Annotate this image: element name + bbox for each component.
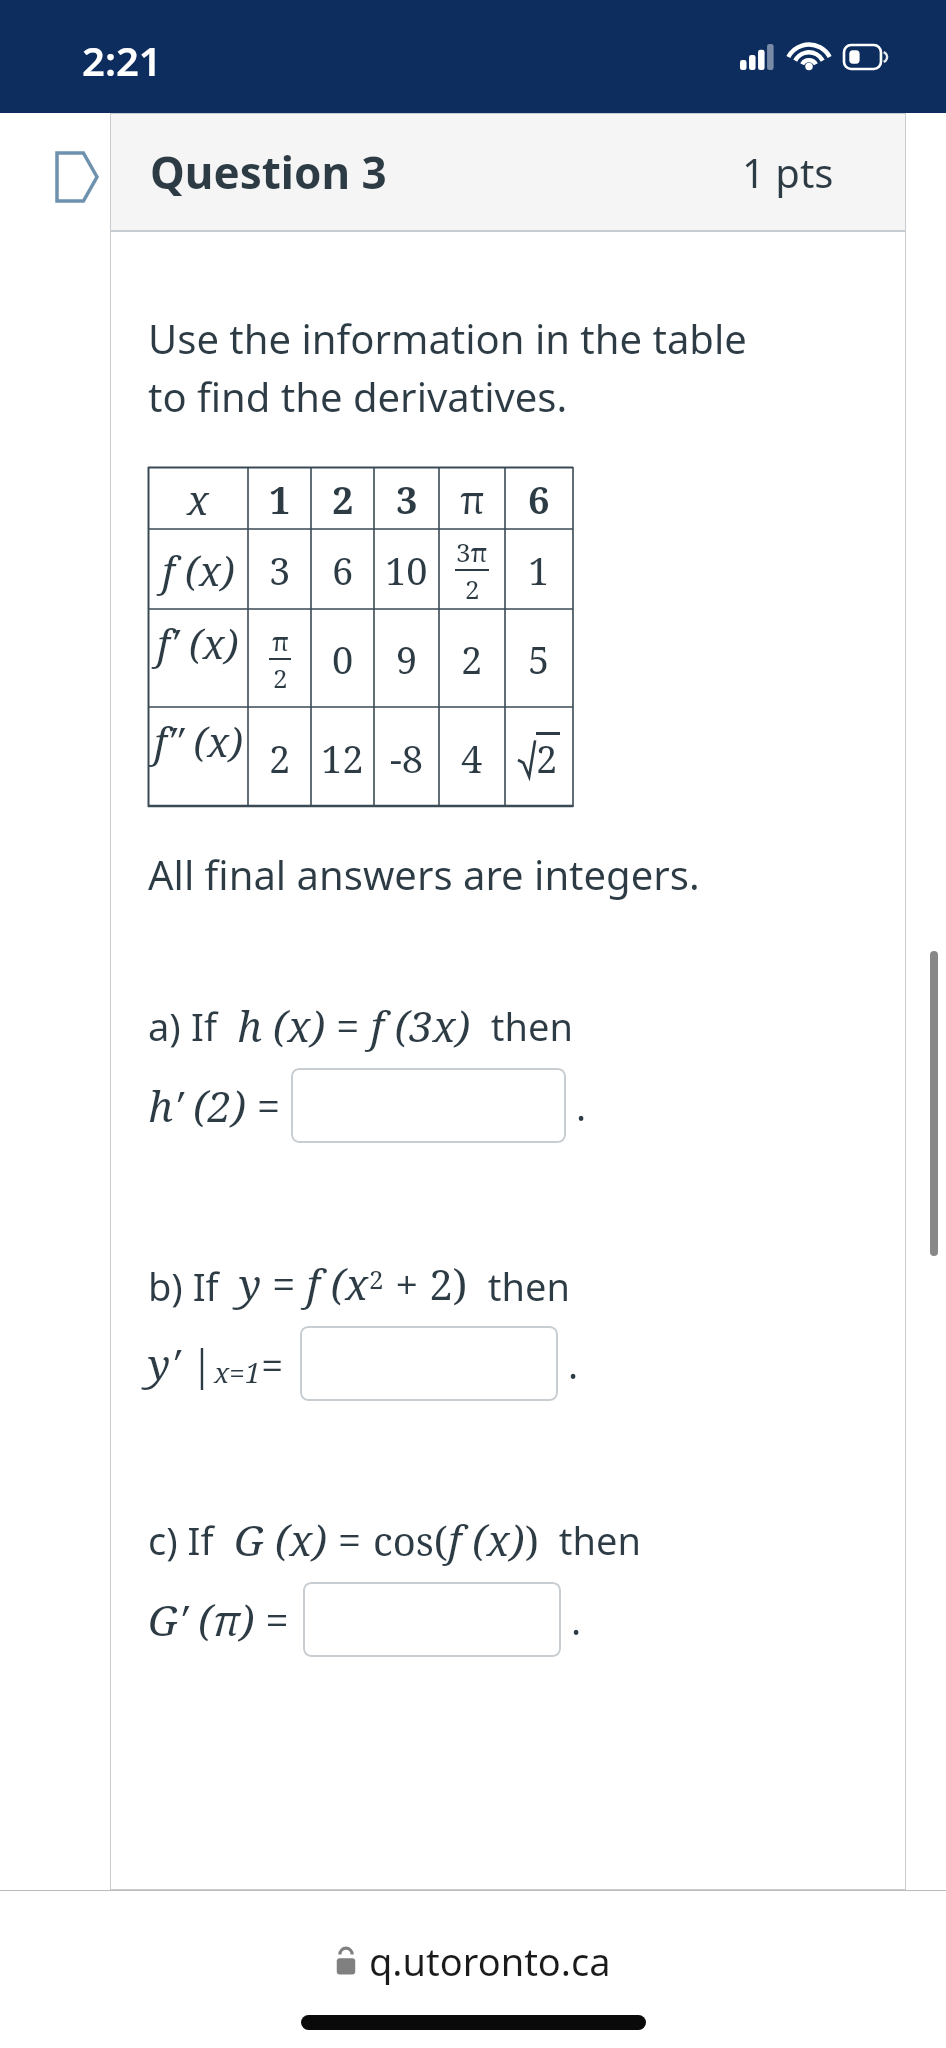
staticText: π xyxy=(460,473,485,525)
staticText: 4 xyxy=(461,732,483,784)
staticText: 3 xyxy=(396,473,418,525)
staticText: = xyxy=(261,1337,284,1391)
staticText: 3π xyxy=(456,534,488,569)
staticText: 5 xyxy=(528,633,550,685)
staticText: f″ (x) xyxy=(154,714,243,768)
staticText: . xyxy=(558,1338,579,1390)
button[interactable]: Answer field xyxy=(291,1068,566,1143)
staticText: y = f (x xyxy=(239,1255,369,1312)
staticText: ) xyxy=(525,1513,539,1567)
staticText: Use the information in the table to find… xyxy=(148,311,747,423)
staticText: 6 xyxy=(528,473,550,525)
staticText: 0 xyxy=(332,633,354,685)
staticText: 2 xyxy=(269,732,291,784)
staticText: -8 xyxy=(390,732,424,784)
staticText: 1 xyxy=(528,544,550,596)
staticText: . xyxy=(561,1594,582,1646)
staticText: 2 xyxy=(273,660,288,695)
staticText: y′ | xyxy=(148,1335,214,1392)
staticText: 1 pts xyxy=(742,145,834,199)
staticText: h (x) = f (3x) xyxy=(237,997,471,1054)
staticText: G (x) = xyxy=(234,1511,373,1568)
staticText: b) If xyxy=(148,1260,239,1312)
staticText: f (x) xyxy=(162,543,235,597)
staticText: 6 xyxy=(332,544,354,596)
staticText: 2 xyxy=(369,1261,384,1296)
staticText: 2 xyxy=(536,732,558,784)
staticText: 2 xyxy=(465,571,480,606)
staticText: 2:21 xyxy=(82,33,162,87)
staticText: 9 xyxy=(396,633,418,685)
staticText: f′ (x) xyxy=(157,616,239,670)
staticText: 1 xyxy=(269,473,291,525)
staticText: cos( xyxy=(373,1513,448,1567)
staticText: c) If xyxy=(148,1514,234,1566)
staticText: + 2) xyxy=(384,1255,468,1312)
staticText: Question 3 xyxy=(150,142,387,202)
staticText: 2 xyxy=(461,633,483,685)
staticText: All final answers are integers. xyxy=(148,847,700,901)
staticText: x=1 xyxy=(214,1353,261,1391)
button[interactable]: q.utoronto.ca xyxy=(335,1935,611,1987)
staticText: h′ (2) = xyxy=(148,1077,281,1134)
staticText: x xyxy=(187,472,209,526)
staticText: If xyxy=(191,1000,237,1052)
other: Question flag xyxy=(57,153,97,201)
button[interactable]: Question 3 xyxy=(110,113,906,231)
staticText: π xyxy=(272,623,289,658)
staticText: q.utoronto.ca xyxy=(369,1935,611,1987)
staticText: 12 xyxy=(321,732,364,784)
staticText: then xyxy=(468,1260,570,1312)
staticText: f (x) xyxy=(448,1511,525,1568)
staticText: a) xyxy=(148,1000,191,1052)
button[interactable]: Answer field xyxy=(303,1582,561,1657)
staticText: 3 xyxy=(269,544,291,596)
staticText: G′ (π) = xyxy=(148,1591,289,1648)
staticText: then xyxy=(471,1000,573,1052)
staticText: then xyxy=(539,1514,641,1566)
staticText: 10 xyxy=(385,544,428,596)
button[interactable]: Answer field xyxy=(300,1326,558,1401)
staticText: . xyxy=(566,1080,587,1132)
staticText: 2 xyxy=(332,473,354,525)
